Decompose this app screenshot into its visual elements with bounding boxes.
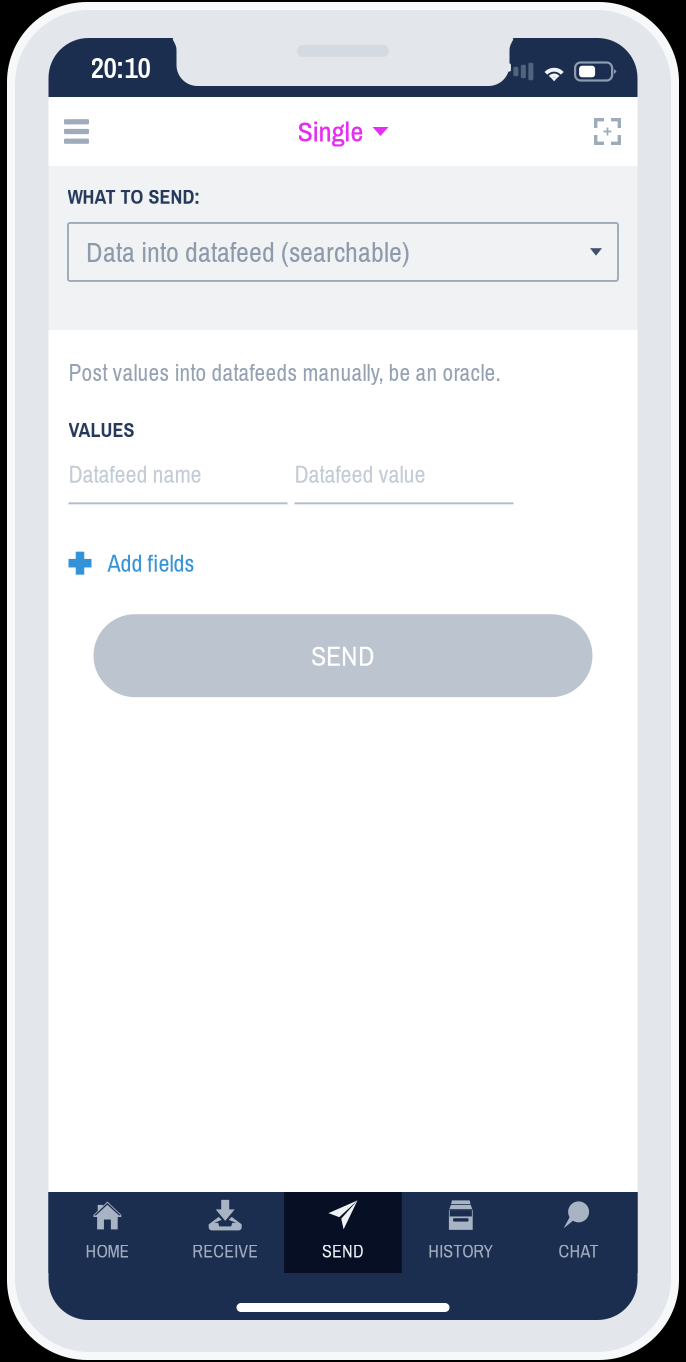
button[interactable]: SEND <box>93 614 592 697</box>
button[interactable]: Single <box>297 106 388 156</box>
staticText: RECEIVE <box>192 1239 258 1263</box>
staticText: Add fields <box>107 547 194 579</box>
staticText: VALUES <box>68 416 134 443</box>
button[interactable]: Scan QR code <box>585 106 629 156</box>
staticText: HISTORY <box>428 1239 493 1263</box>
staticText: WHAT TO SEND: <box>67 183 199 210</box>
staticText: Datafeed value <box>294 458 425 490</box>
button[interactable]: SEND <box>284 1192 402 1273</box>
button[interactable]: CHAT <box>520 1192 637 1273</box>
staticText: Data into datafeed (searchable) <box>86 233 410 271</box>
staticText: CHAT <box>559 1239 599 1263</box>
button[interactable]: RECEIVE <box>166 1192 284 1273</box>
staticText: Datafeed name <box>68 458 201 490</box>
staticText: Post values into datafeeds manually, be … <box>68 357 500 388</box>
staticText: HOME <box>85 1239 129 1263</box>
staticText: SEND <box>311 637 375 674</box>
button[interactable]: Data into datafeed (searchable) <box>68 223 618 281</box>
staticText: SEND <box>322 1239 364 1263</box>
button[interactable]: HISTORY <box>402 1192 520 1273</box>
button[interactable]: HOME <box>48 1192 166 1273</box>
button[interactable]: Add fields <box>68 541 617 585</box>
staticText: 20:10 <box>90 48 150 87</box>
button[interactable]: Menu <box>54 106 98 156</box>
staticText: Single <box>297 113 363 150</box>
